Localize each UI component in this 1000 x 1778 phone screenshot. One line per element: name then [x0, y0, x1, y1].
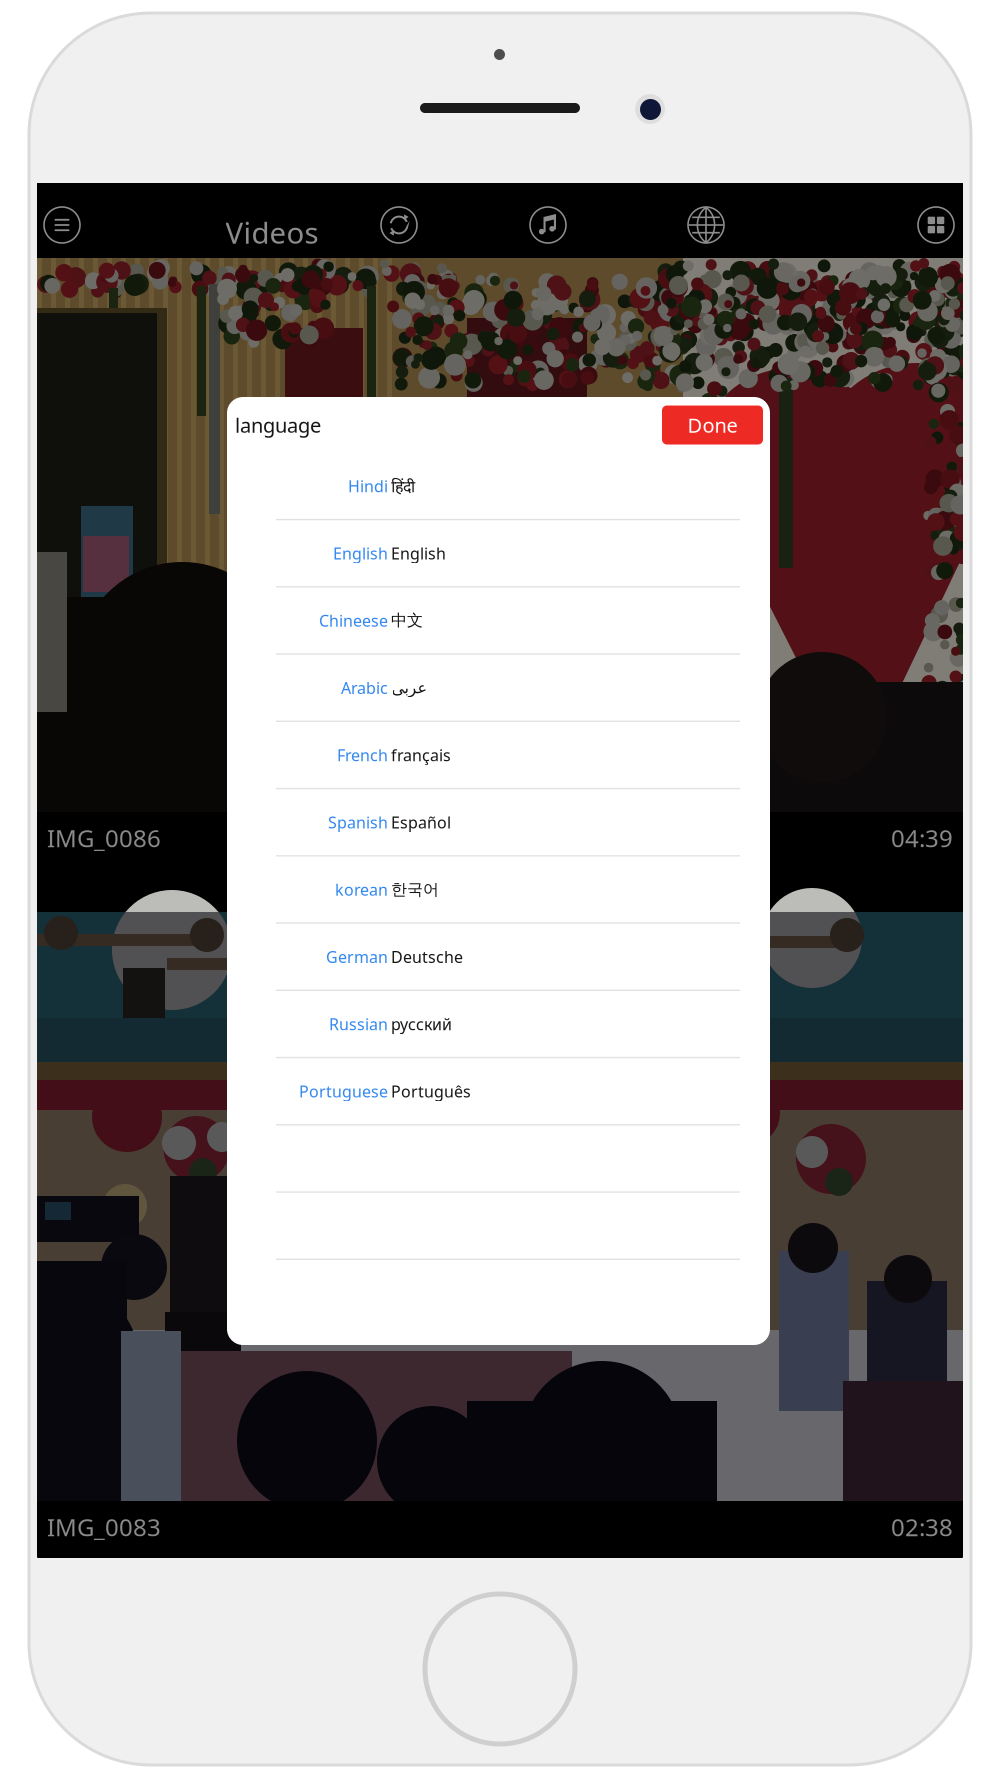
- staticText: English: [333, 543, 388, 564]
- staticText: French: [337, 744, 388, 765]
- button[interactable]: Portuguese: [227, 1058, 770, 1125]
- button[interactable]: Refresh: [378, 204, 420, 246]
- staticText: korean: [335, 879, 388, 900]
- staticText: 02:38: [891, 1511, 953, 1543]
- button[interactable]: French: [227, 722, 770, 789]
- staticText: Español: [391, 812, 451, 833]
- staticText: Arabic: [341, 677, 388, 698]
- button[interactable]: Hindi: [227, 453, 770, 520]
- button[interactable]: Spanish: [227, 789, 770, 856]
- staticText: German: [326, 946, 388, 967]
- button[interactable]: korean: [227, 856, 770, 924]
- button[interactable]: German: [227, 924, 770, 991]
- staticText: русский: [391, 1013, 452, 1034]
- staticText: عربى: [391, 679, 427, 697]
- button[interactable]: Language: [685, 204, 727, 246]
- button[interactable]: Menu: [41, 204, 83, 246]
- button[interactable]: Music: [527, 204, 569, 246]
- staticText: Chineese: [319, 610, 388, 631]
- staticText: IMG_0083: [47, 1511, 161, 1543]
- button[interactable]: Done: [662, 405, 763, 444]
- button[interactable]: Arabic: [227, 655, 770, 722]
- staticText: 中文: [391, 611, 423, 630]
- staticText: language: [235, 412, 321, 438]
- button[interactable]: English: [227, 520, 770, 587]
- staticText: 04:39: [891, 822, 953, 854]
- staticText: Russian: [329, 1013, 388, 1034]
- button[interactable]: Grid layout: [915, 204, 957, 246]
- staticText: Deutsche: [391, 946, 463, 967]
- button[interactable]: Chineese: [227, 587, 770, 655]
- staticText: Portuguese: [299, 1081, 388, 1102]
- staticText: Português: [391, 1081, 471, 1102]
- staticText: 한국어: [391, 880, 439, 899]
- staticText: Hindi: [348, 475, 388, 496]
- staticText: IMG_0086: [47, 822, 161, 854]
- button[interactable]: Russian: [227, 991, 770, 1058]
- staticText: français: [391, 744, 451, 765]
- staticText: Done: [687, 412, 737, 438]
- staticText: Videos: [225, 213, 318, 252]
- staticText: Spanish: [328, 812, 388, 833]
- staticText: English: [391, 543, 446, 564]
- staticText: हिंदी: [391, 475, 415, 496]
